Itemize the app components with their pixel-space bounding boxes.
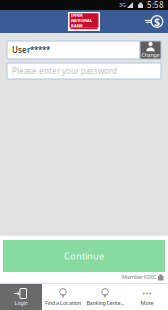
staticText: User***** (12, 45, 50, 55)
staticText: NATIONAL (71, 18, 92, 23)
staticText: Banking Cente... (86, 299, 123, 307)
staticText: 3G (119, 1, 126, 9)
staticText: Please enter your password (12, 66, 117, 76)
staticText: Find a Location (45, 299, 81, 307)
button[interactable]: Banking Cente... (84, 284, 126, 310)
staticText: 5:58 (147, 0, 164, 10)
staticText: Member FDIC (122, 273, 156, 281)
button[interactable]: Continue (3, 240, 165, 272)
button[interactable]: Change (140, 41, 161, 59)
staticText: INTER (71, 12, 83, 18)
staticText: Change (141, 51, 159, 59)
button[interactable]: Payments (145, 14, 168, 28)
button[interactable]: Find a Location (42, 284, 84, 310)
button[interactable]: More (126, 284, 168, 310)
staticText: $ (154, 14, 160, 29)
staticText: BANK (71, 23, 83, 28)
staticText: Login (14, 299, 27, 307)
button[interactable]: Login (0, 284, 42, 310)
staticText: Continue (64, 250, 104, 262)
staticText: More (140, 299, 153, 307)
